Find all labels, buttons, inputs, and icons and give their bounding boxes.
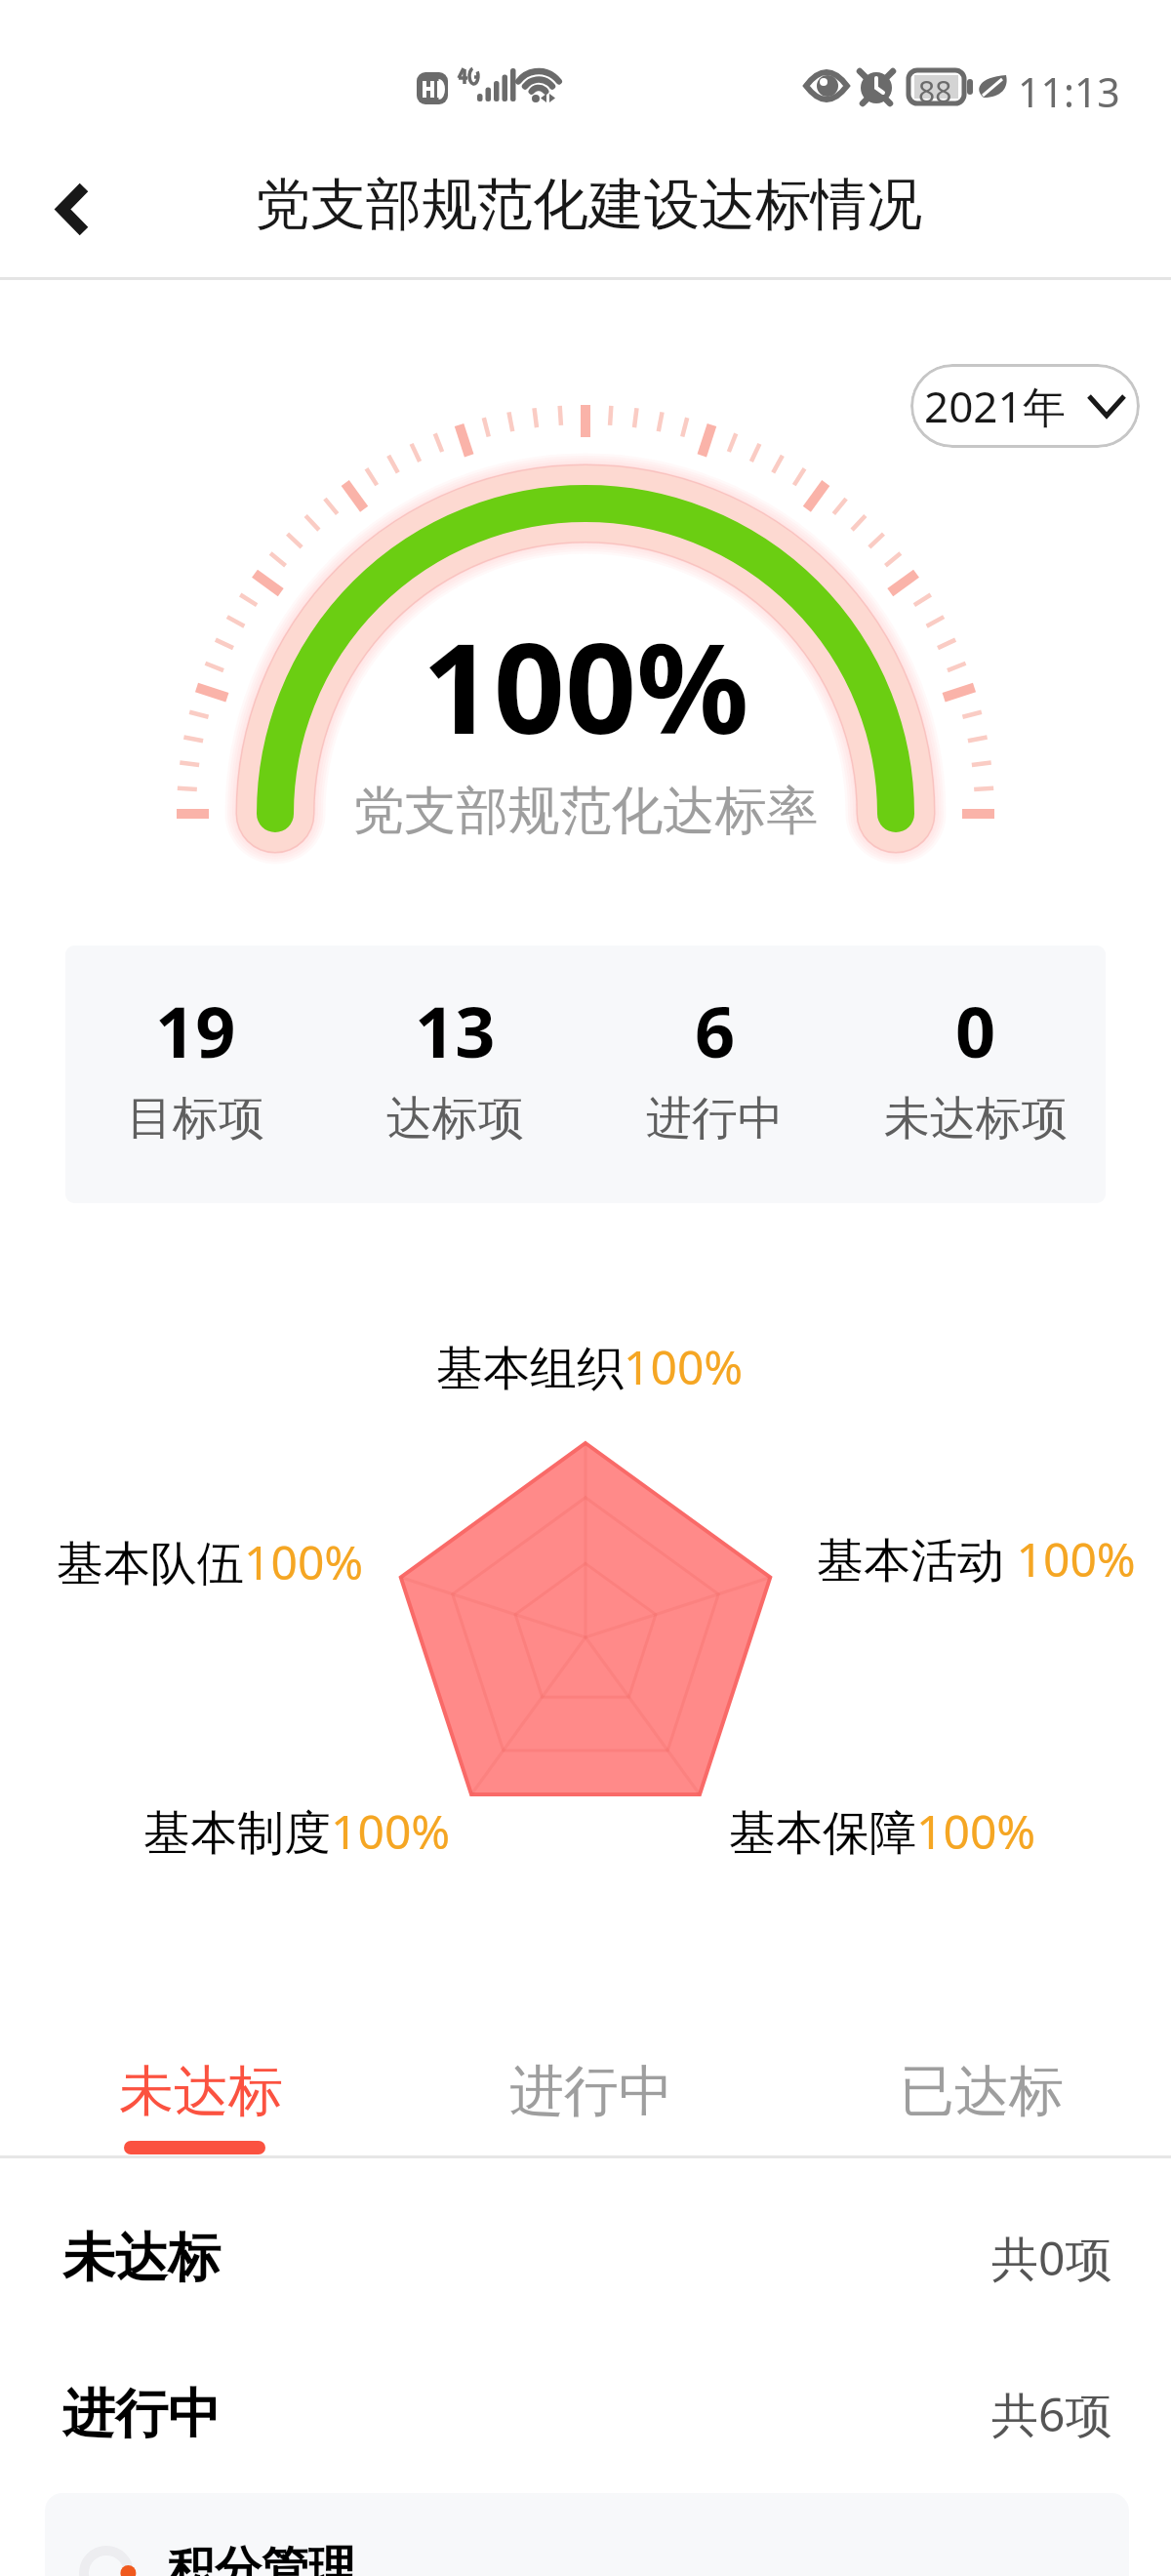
staticText: 未达标项 (884, 1090, 1068, 1147)
button[interactable]: 进行中 (0, 2351, 1171, 2477)
staticText: 已达标 (900, 2057, 1064, 2126)
staticText: 100% (0, 600, 1171, 770)
staticText: 基本制度100% (143, 1799, 451, 1864)
button[interactable]: Back (25, 162, 119, 256)
staticText: 2021年 (924, 377, 1066, 435)
button[interactable]: 积分管理 (45, 2493, 1129, 2576)
button[interactable]: 未达标 (6, 2030, 396, 2154)
staticText: 11:13 (1018, 64, 1120, 119)
staticText: 6 (695, 983, 736, 1078)
staticText: 19 (155, 983, 236, 1078)
staticText: 未达标 (119, 2057, 283, 2126)
staticText: 进行中 (62, 2381, 221, 2447)
staticText: 共0项 (991, 2226, 1112, 2290)
staticText: 进行中 (509, 2057, 673, 2126)
staticText: 积分管理 (168, 2540, 355, 2576)
staticText: 党支部规范化建设达标情况 (255, 170, 922, 240)
staticText: 0 (955, 983, 996, 1078)
staticText: 共6项 (991, 2382, 1112, 2446)
button[interactable]: 2021年 (910, 364, 1140, 448)
staticText: 党支部规范化达标率 (0, 779, 1171, 844)
staticText: 基本组织100% (436, 1335, 744, 1399)
staticText: 目标项 (127, 1090, 264, 1147)
staticText: 基本活动 100% (817, 1527, 1136, 1591)
button[interactable]: 已达标 (787, 2030, 1171, 2154)
staticText: 88 (918, 71, 952, 111)
staticText: 达标项 (386, 1090, 524, 1147)
button[interactable]: 未达标 (0, 2194, 1171, 2321)
staticText: 13 (415, 983, 496, 1078)
staticText: 基本队伍100% (57, 1530, 364, 1594)
staticText: 进行中 (646, 1090, 784, 1147)
staticText: 未达标 (62, 2225, 221, 2291)
staticText: 基本保障100% (729, 1799, 1036, 1864)
button[interactable]: 进行中 (396, 2030, 787, 2154)
